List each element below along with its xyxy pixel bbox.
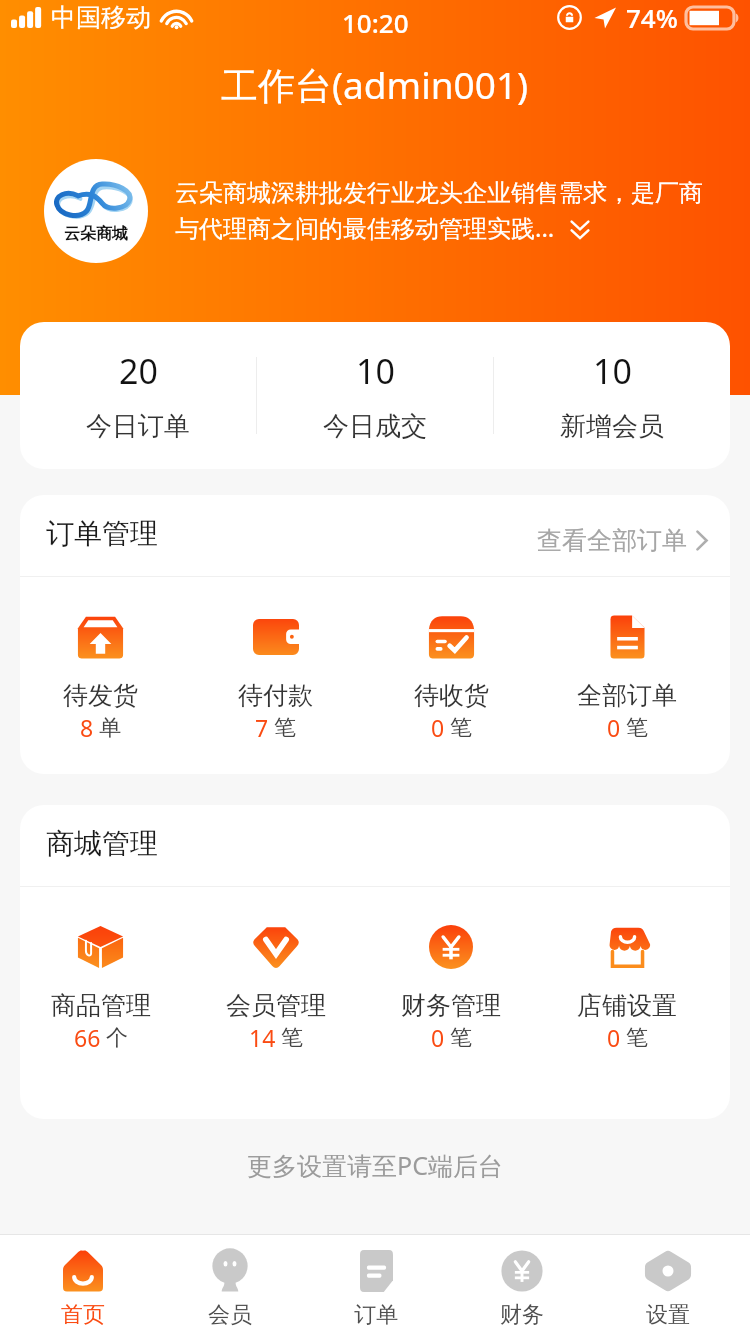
staticText: 66 [74, 1022, 101, 1053]
staticText: 笔 [450, 1024, 472, 1052]
staticText: 设置 [646, 1301, 690, 1329]
button[interactable]: 待发货 [20, 615, 188, 743]
button[interactable]: 查看全部订单 [537, 525, 708, 556]
staticText: 商品管理 [51, 990, 151, 1021]
staticText: 笔 [626, 1024, 648, 1052]
staticText: 待付款 [238, 680, 313, 711]
staticText: 个 [106, 1024, 128, 1052]
button[interactable]: 店铺设置 [539, 925, 715, 1053]
button[interactable]: 首页 [9, 1235, 156, 1334]
button[interactable]: 财务管理 [363, 925, 539, 1053]
other: Rotation lock [557, 5, 582, 30]
staticText: 笔 [281, 1024, 303, 1052]
staticText: 单 [99, 714, 121, 742]
staticText: 新增会员 [560, 410, 664, 443]
button[interactable]: 10 [494, 348, 730, 443]
staticText: 订单管理 [46, 516, 158, 551]
other: 订单 [360, 1250, 393, 1292]
staticText: 财务 [500, 1301, 544, 1329]
other: 财务 [501, 1250, 543, 1292]
staticText: 店铺设置 [577, 990, 677, 1021]
button[interactable]: 订单 [303, 1235, 449, 1334]
button[interactable]: 商品管理 [20, 925, 188, 1053]
staticText: 14 [249, 1022, 276, 1053]
button[interactable]: Expand description [569, 219, 591, 241]
staticText: 0 [607, 712, 621, 743]
staticText: 商城管理 [46, 826, 158, 861]
staticText: 0 [431, 1022, 445, 1053]
other: 首页 [63, 1250, 103, 1292]
staticText: 笔 [274, 714, 296, 742]
staticText: 10 [356, 348, 395, 394]
button[interactable]: 待付款 [188, 615, 363, 743]
staticText: 订单 [354, 1301, 398, 1329]
button[interactable]: 10 [257, 348, 493, 443]
staticText: 云朵商城 [64, 224, 128, 244]
staticText: 10 [593, 348, 632, 394]
staticText: 0 [431, 712, 445, 743]
button[interactable]: 会员管理 [188, 925, 363, 1053]
staticText: 待收货 [414, 680, 489, 711]
staticText: 财务管理 [401, 990, 501, 1021]
staticText: 工作台(admin001) [221, 59, 529, 110]
staticText: 20 [119, 348, 158, 394]
staticText: 今日成交 [323, 410, 427, 443]
staticText: 中国移动 [51, 2, 151, 33]
button[interactable]: 财务 [449, 1235, 595, 1334]
other: 会员 [212, 1250, 248, 1292]
staticText: 会员管理 [226, 990, 326, 1021]
button[interactable]: 待收货 [363, 615, 539, 743]
staticText: 8 [80, 712, 94, 743]
staticText: 笔 [626, 714, 648, 742]
button[interactable]: 设置 [595, 1235, 741, 1334]
other: 设置 [644, 1250, 692, 1292]
staticText: 7 [255, 712, 269, 743]
staticText: 今日订单 [86, 410, 190, 443]
staticText: 全部订单 [577, 680, 677, 711]
staticText: 会员 [208, 1301, 252, 1329]
staticText: 查看全部订单 [537, 525, 687, 556]
staticText: 更多设置请至PC端后台 [247, 1148, 503, 1182]
staticText: 云朵商城深耕批发行业龙头企业销售需求，是厂商与代理商之间的最佳移动管理实践... [175, 178, 714, 244]
staticText: 74% [626, 0, 678, 35]
staticText: 笔 [450, 714, 472, 742]
button[interactable]: 全部订单 [539, 615, 715, 743]
staticText: 0 [607, 1022, 621, 1053]
button[interactable]: 20 [20, 348, 256, 443]
staticText: 待发货 [63, 680, 138, 711]
button[interactable]: 会员 [156, 1235, 303, 1334]
staticText: 10:20 [342, 5, 409, 40]
staticText: 首页 [61, 1301, 105, 1329]
